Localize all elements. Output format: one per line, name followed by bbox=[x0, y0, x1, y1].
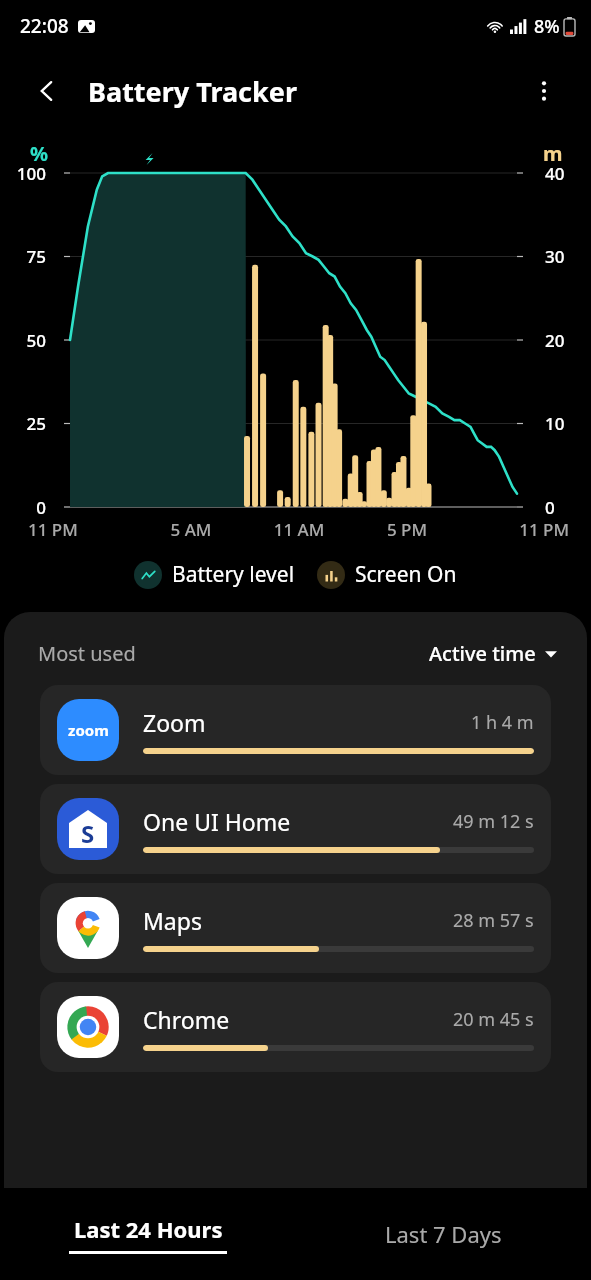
staticText: 25 bbox=[0, 412, 46, 435]
staticText: 11 AM bbox=[245, 518, 353, 541]
staticText: Battery Tracker bbox=[88, 73, 297, 110]
button[interactable]: Active time bbox=[425, 636, 561, 671]
staticText: Battery level bbox=[172, 560, 295, 589]
button[interactable]: Last 7 Days bbox=[295, 1188, 591, 1280]
staticText: Screen On bbox=[355, 560, 457, 589]
staticText: 10 bbox=[545, 412, 591, 435]
staticText: % bbox=[30, 140, 49, 167]
button[interactable]: S bbox=[40, 784, 551, 874]
button[interactable]: Chrome bbox=[40, 982, 551, 1072]
button[interactable]: More options bbox=[523, 70, 565, 112]
staticText: 11 PM bbox=[461, 518, 569, 541]
staticText: Chrome bbox=[143, 1004, 453, 1035]
button[interactable]: Back bbox=[26, 70, 68, 112]
staticText: 1 h 4 m bbox=[471, 710, 534, 735]
staticText: Last 24 Hours bbox=[74, 1214, 223, 1244]
staticText: 49 m 12 s bbox=[453, 809, 534, 834]
staticText: 22:08 bbox=[20, 13, 69, 39]
button[interactable]: Last 24 Hours bbox=[0, 1188, 295, 1280]
staticText: 40 bbox=[545, 162, 591, 185]
staticText: 50 bbox=[0, 329, 46, 352]
staticText: 30 bbox=[545, 245, 591, 268]
staticText: 28 m 57 s bbox=[453, 908, 534, 933]
staticText: 20 m 45 s bbox=[453, 1007, 534, 1032]
staticText: 75 bbox=[0, 245, 46, 268]
staticText: Maps bbox=[143, 905, 453, 936]
staticText: Last 7 Days bbox=[385, 1219, 502, 1249]
staticText: Zoom bbox=[143, 707, 471, 738]
button[interactable]: Maps bbox=[40, 883, 551, 973]
button[interactable] bbox=[317, 561, 345, 589]
staticText: zoom bbox=[68, 720, 109, 740]
staticText: Active time bbox=[429, 640, 536, 667]
staticText: S bbox=[81, 817, 95, 850]
button[interactable] bbox=[134, 561, 162, 589]
staticText: 8% bbox=[534, 14, 560, 39]
staticText: 20 bbox=[545, 329, 591, 352]
staticText: 5 PM bbox=[353, 518, 461, 541]
staticText: 11 PM bbox=[28, 518, 137, 541]
staticText: Most used bbox=[38, 640, 136, 667]
staticText: 0 bbox=[545, 496, 591, 519]
staticText: 0 bbox=[0, 496, 46, 519]
staticText: 100 bbox=[0, 162, 46, 185]
staticText: One UI Home bbox=[143, 806, 453, 837]
staticText: 5 AM bbox=[137, 518, 245, 541]
button[interactable]: zoom bbox=[40, 685, 551, 775]
staticText: m bbox=[543, 140, 563, 167]
